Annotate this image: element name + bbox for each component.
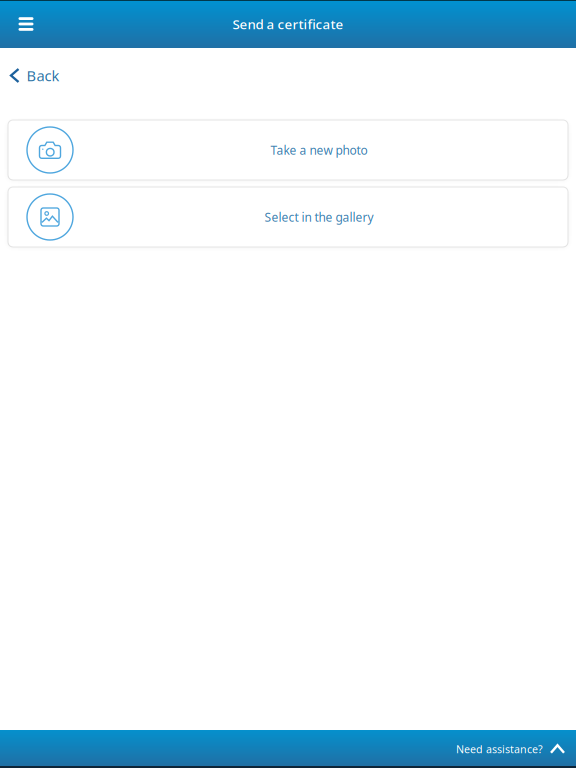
staticText: Back <box>26 66 59 85</box>
button[interactable]: Take a new photo <box>8 120 568 180</box>
staticText: Select in the gallery <box>264 209 373 225</box>
button[interactable]: Need assistance? <box>456 731 576 767</box>
button[interactable]: Menu <box>0 0 52 48</box>
button[interactable]: Select in the gallery <box>8 187 568 247</box>
button[interactable]: Back <box>0 48 576 103</box>
staticText: Send a certificate <box>232 15 343 33</box>
staticText: Need assistance? <box>456 742 543 756</box>
staticText: Take a new photo <box>270 142 367 158</box>
